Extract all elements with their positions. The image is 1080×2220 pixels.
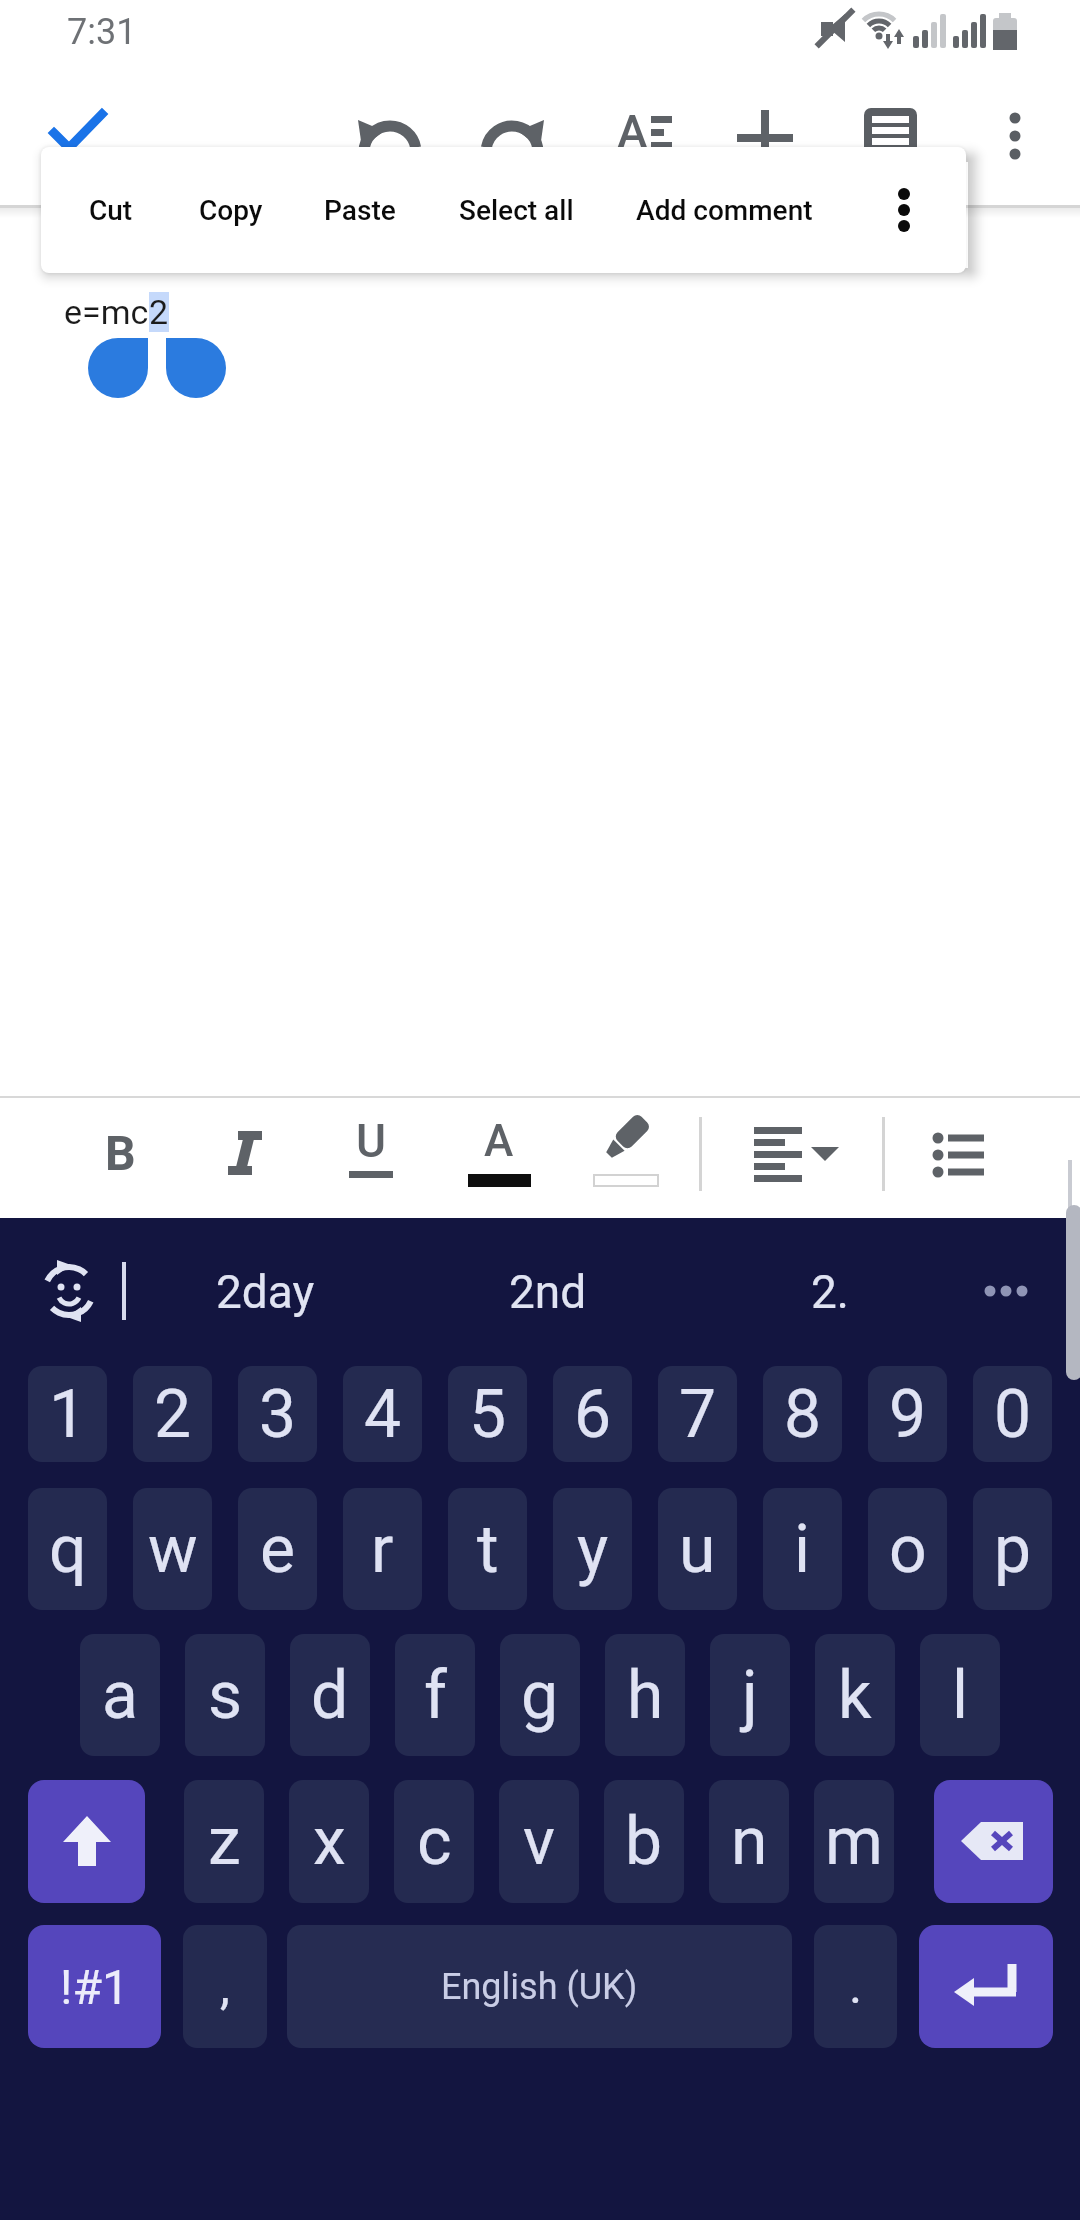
button[interactable]: e bbox=[238, 1488, 317, 1610]
button[interactable] bbox=[352, 108, 428, 184]
staticText: u bbox=[679, 1511, 716, 1588]
button[interactable]: k bbox=[815, 1634, 895, 1756]
staticText: h bbox=[627, 1657, 664, 1734]
button[interactable]: Cut bbox=[61, 180, 161, 240]
button[interactable] bbox=[934, 1780, 1053, 1903]
staticText: Add comment bbox=[636, 194, 813, 227]
button[interactable]: Paste bbox=[300, 180, 420, 240]
staticText: 6 bbox=[574, 1376, 612, 1453]
button[interactable]: v bbox=[499, 1780, 579, 1903]
button[interactable] bbox=[981, 100, 1051, 176]
staticText: 8 bbox=[784, 1376, 822, 1453]
button[interactable] bbox=[920, 1110, 1000, 1190]
button[interactable]: English (UK) bbox=[287, 1925, 792, 2048]
staticText: 2. bbox=[811, 1265, 849, 1319]
staticText: d bbox=[311, 1657, 349, 1734]
button[interactable]: x bbox=[289, 1780, 369, 1903]
button[interactable] bbox=[36, 1258, 102, 1324]
staticText: y bbox=[577, 1511, 609, 1588]
button[interactable]: f bbox=[395, 1634, 475, 1756]
button[interactable]: 2. bbox=[790, 1262, 870, 1322]
button[interactable]: Select all bbox=[416, 180, 616, 240]
button[interactable] bbox=[28, 1780, 145, 1903]
button[interactable]: j bbox=[710, 1634, 790, 1756]
staticText: A bbox=[484, 1115, 514, 1167]
staticText: 2 bbox=[154, 1376, 192, 1453]
button[interactable]: 2day bbox=[185, 1262, 345, 1322]
staticText: 9 bbox=[889, 1376, 927, 1453]
staticText: Cut bbox=[89, 194, 133, 227]
staticText: b bbox=[625, 1803, 663, 1880]
button[interactable]: o bbox=[868, 1488, 947, 1610]
button[interactable]: i bbox=[763, 1488, 842, 1610]
button[interactable] bbox=[740, 1110, 850, 1190]
button[interactable]: 4 bbox=[343, 1366, 422, 1462]
staticText: m bbox=[825, 1803, 883, 1880]
button[interactable]: u bbox=[658, 1488, 737, 1610]
staticText: e=mc bbox=[64, 292, 149, 332]
button[interactable]: 9 bbox=[868, 1366, 947, 1462]
staticText: B bbox=[105, 1125, 136, 1181]
button[interactable]: n bbox=[709, 1780, 789, 1903]
button[interactable]: 8 bbox=[763, 1366, 842, 1462]
staticText: c bbox=[417, 1803, 452, 1880]
button[interactable]: !#1 bbox=[28, 1925, 161, 2048]
button[interactable] bbox=[919, 1925, 1053, 2048]
button[interactable]: w bbox=[133, 1488, 212, 1610]
button[interactable]: 2nd bbox=[468, 1262, 628, 1322]
button[interactable]: d bbox=[290, 1634, 370, 1756]
button[interactable]: B bbox=[88, 1118, 152, 1188]
button[interactable]: 5 bbox=[448, 1366, 527, 1462]
staticText: Copy bbox=[199, 194, 263, 227]
button[interactable]: A bbox=[464, 1110, 534, 1190]
button[interactable]: y bbox=[553, 1488, 632, 1610]
button[interactable]: q bbox=[28, 1488, 107, 1610]
button[interactable]: , bbox=[183, 1925, 267, 2048]
staticText: 2day bbox=[216, 1265, 315, 1319]
button[interactable] bbox=[590, 1110, 662, 1190]
staticText: q bbox=[49, 1511, 87, 1588]
button[interactable]: h bbox=[605, 1634, 685, 1756]
button[interactable]: 7 bbox=[658, 1366, 737, 1462]
staticText: p bbox=[994, 1511, 1032, 1588]
button[interactable]: t bbox=[448, 1488, 527, 1610]
button[interactable]: Copy bbox=[181, 180, 281, 240]
button[interactable]: p bbox=[973, 1488, 1052, 1610]
button[interactable]: 1 bbox=[28, 1366, 107, 1462]
button[interactable]: c bbox=[394, 1780, 474, 1903]
button[interactable]: 6 bbox=[553, 1366, 632, 1462]
button[interactable]: A bbox=[607, 100, 683, 176]
button[interactable] bbox=[40, 98, 116, 174]
staticText: e bbox=[260, 1511, 295, 1588]
staticText: j bbox=[742, 1657, 758, 1734]
button[interactable]: 2 bbox=[133, 1366, 212, 1462]
staticText: 4 bbox=[364, 1376, 402, 1453]
button[interactable] bbox=[852, 100, 928, 176]
staticText: s bbox=[208, 1657, 243, 1734]
button[interactable] bbox=[213, 1118, 277, 1188]
staticText: a bbox=[102, 1657, 138, 1734]
staticText: English (UK) bbox=[441, 1966, 638, 2008]
button[interactable]: g bbox=[500, 1634, 580, 1756]
button[interactable] bbox=[876, 172, 932, 248]
button[interactable]: 3 bbox=[238, 1366, 317, 1462]
button[interactable]: Add comment bbox=[584, 180, 864, 240]
button[interactable]: s bbox=[185, 1634, 265, 1756]
button[interactable] bbox=[474, 108, 550, 184]
button[interactable]: a bbox=[80, 1634, 160, 1756]
staticText: z bbox=[208, 1803, 241, 1880]
button[interactable]: z bbox=[184, 1780, 264, 1903]
button[interactable]: l bbox=[920, 1634, 1000, 1756]
staticText: U bbox=[356, 1114, 387, 1168]
button[interactable] bbox=[727, 100, 803, 176]
staticText: l bbox=[952, 1657, 969, 1734]
button[interactable]: 0 bbox=[973, 1366, 1052, 1462]
button[interactable]: m bbox=[814, 1780, 894, 1903]
button[interactable]: U bbox=[338, 1110, 404, 1190]
staticText: 2nd bbox=[509, 1265, 587, 1319]
button[interactable]: b bbox=[604, 1780, 684, 1903]
button[interactable]: r bbox=[343, 1488, 422, 1610]
button[interactable]: . bbox=[814, 1925, 897, 2048]
staticText: 7 bbox=[679, 1376, 717, 1453]
button[interactable] bbox=[970, 1258, 1042, 1324]
